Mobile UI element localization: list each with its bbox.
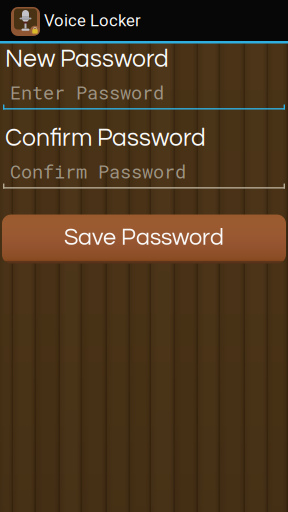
staticText: New Password	[5, 46, 169, 72]
staticText: Confirm Password	[10, 159, 186, 183]
staticText: Save Password	[64, 225, 224, 249]
staticText: Voice Locker	[44, 11, 141, 30]
staticText: Confirm Password	[5, 125, 206, 151]
button[interactable]: Save Password	[2, 215, 286, 264]
staticText: Enter Password	[10, 80, 164, 104]
